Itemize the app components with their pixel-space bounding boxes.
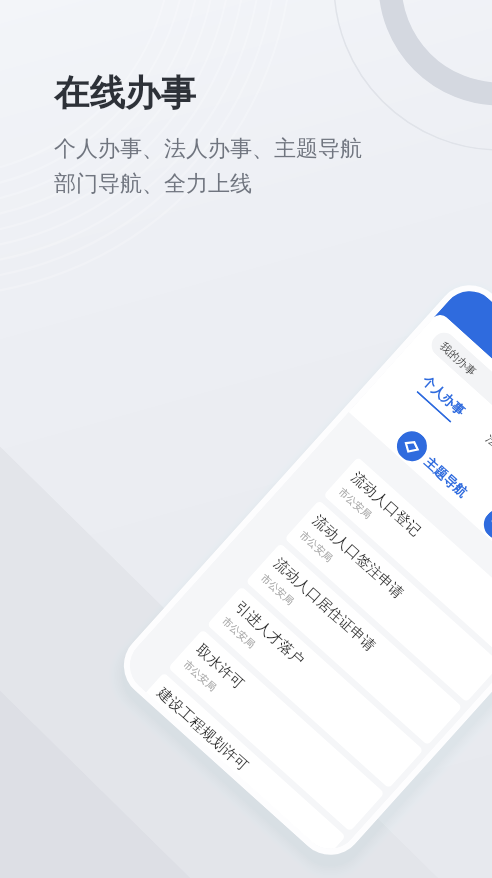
- staticText: 流动人口居住证申请: [270, 554, 380, 655]
- staticText: 市公安局: [336, 485, 374, 521]
- button[interactable]: 流动人口签注申请: [284, 500, 492, 702]
- staticText: 部门导航、全力上线: [54, 170, 252, 198]
- staticText: 在线办事: [54, 71, 196, 116]
- button[interactable]: 我的办事: [426, 328, 492, 520]
- staticText: 建设工程规划许可: [154, 683, 252, 774]
- staticText: 法人办事: [483, 430, 492, 476]
- staticText: 市公安局: [297, 528, 335, 565]
- staticText: 个人办事: [419, 372, 469, 419]
- button[interactable]: 部门导航: [478, 503, 492, 584]
- button[interactable]: 流动人口登记: [323, 457, 492, 659]
- staticText: 市公安局: [181, 657, 219, 694]
- staticText: 取水许可: [193, 640, 248, 693]
- staticText: 市公安局: [258, 571, 297, 608]
- staticText: 个人办事、法人办事、主题导航: [54, 135, 362, 163]
- staticText: 市公安局: [219, 614, 258, 651]
- staticText: 主题导航: [421, 454, 471, 500]
- button[interactable]: 流动人口居住证申请: [245, 543, 462, 746]
- button[interactable]: 法人办事: [476, 428, 492, 484]
- staticText: 流动人口登记: [348, 468, 425, 540]
- staticText: 流动人口签注申请: [309, 511, 407, 602]
- staticText: 引进人才落户: [231, 597, 308, 669]
- button[interactable]: 主题导航: [391, 425, 475, 505]
- button[interactable]: 引进人才落户: [207, 586, 424, 789]
- button[interactable]: 建设工程规划许可: [146, 672, 346, 856]
- staticText: 我的办事: [437, 339, 479, 379]
- button[interactable]: 取水许可: [168, 629, 385, 832]
- button[interactable]: 个人办事: [413, 371, 470, 426]
